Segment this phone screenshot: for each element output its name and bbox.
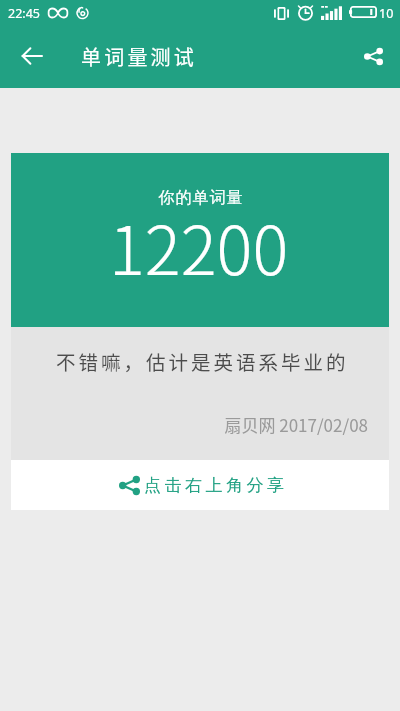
staticText: 你的单词量 (158, 188, 243, 208)
staticText: 扇贝网 2017/02/08 (11, 412, 368, 437)
staticText: 12200 (109, 197, 289, 294)
staticText: 22:45 (8, 5, 40, 22)
button[interactable]: Share (351, 34, 395, 78)
staticText: 点击右上角分享 (144, 475, 288, 496)
staticText: 不错嘛，估计是英语系毕业的 (56, 347, 349, 375)
button[interactable]: Back (10, 34, 54, 78)
button[interactable]: 点击右上角分享 (11, 460, 389, 510)
staticText: 单词量测试 (81, 42, 197, 71)
staticText: 10 (379, 5, 394, 22)
